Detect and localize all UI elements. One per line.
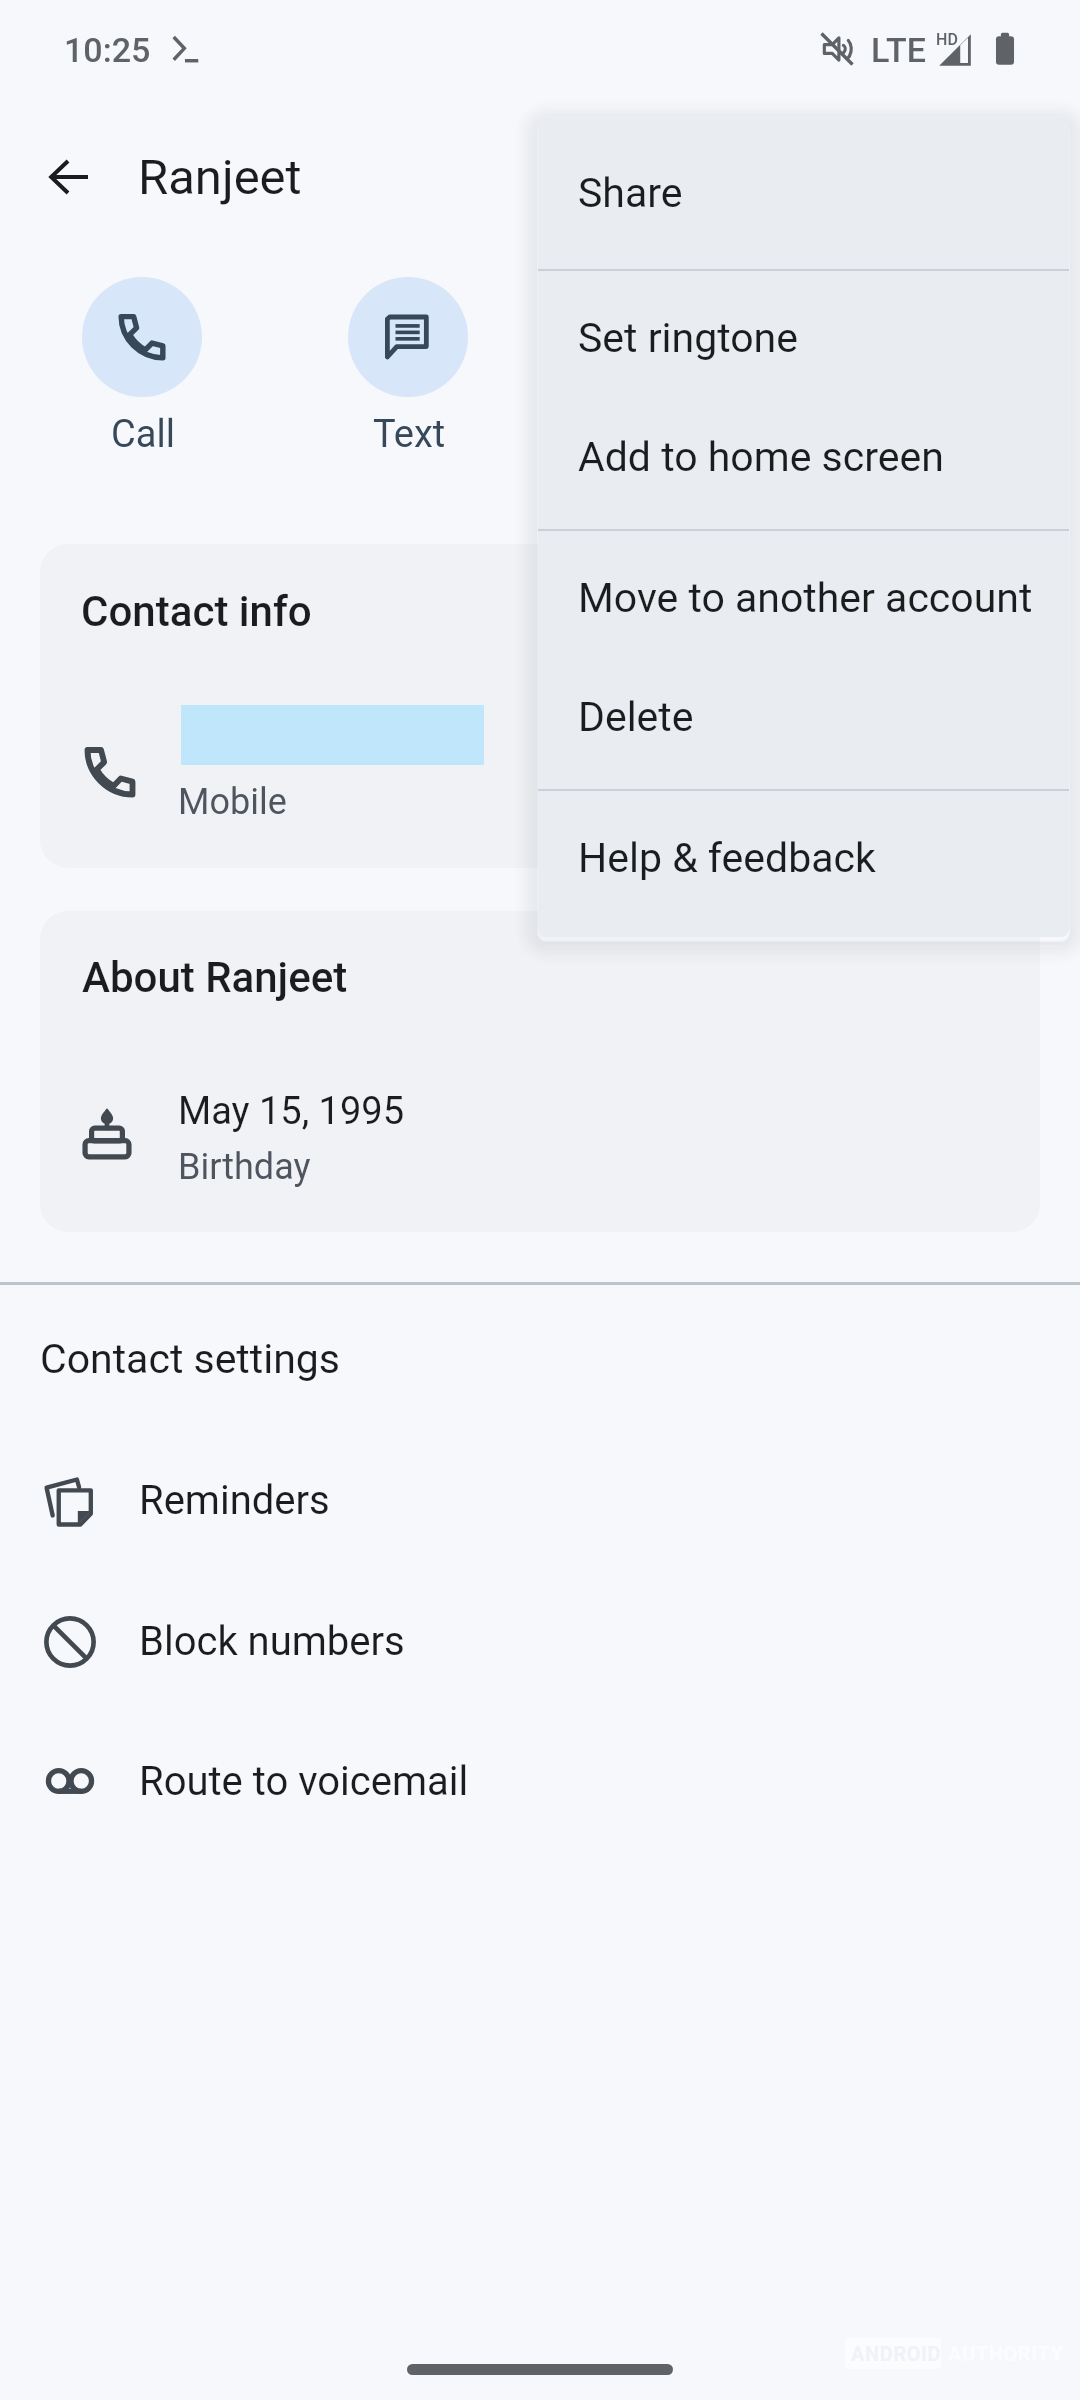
button[interactable]: About Ranjeet <box>40 911 1040 1232</box>
button[interactable]: Back <box>26 133 114 221</box>
staticText: About Ranjeet <box>82 953 348 1002</box>
staticText: Mobile <box>178 781 287 823</box>
button[interactable]: Set ringtone <box>538 273 1069 392</box>
button[interactable]: Call <box>82 277 202 457</box>
staticText: Text <box>373 412 446 457</box>
staticText: Block numbers <box>139 1618 405 1665</box>
staticText: Move to another account <box>578 574 1033 622</box>
staticText: Share <box>578 169 683 217</box>
staticText: LTE <box>871 30 926 70</box>
staticText: Delete <box>578 693 694 741</box>
staticText: May 15, 1995 <box>178 1089 405 1134</box>
button[interactable]: Block numbers <box>0 1586 1080 1696</box>
button[interactable]: Text <box>348 277 468 457</box>
button[interactable]: Route to voicemail <box>0 1725 1080 1835</box>
button[interactable]: Share <box>538 128 1069 247</box>
staticText: Birthday <box>178 1146 311 1188</box>
staticText: Help & feedback <box>578 834 876 882</box>
staticText: Add to home screen <box>578 433 944 481</box>
staticText: Call <box>111 412 175 457</box>
button[interactable]: Help & feedback <box>538 793 1069 912</box>
staticText: Contact info <box>81 587 312 636</box>
button[interactable]: Delete <box>538 652 1069 771</box>
button[interactable]: Add to home screen <box>538 392 1069 511</box>
button[interactable]: Move to another account <box>538 533 1069 652</box>
button[interactable]: Contact info <box>40 544 1040 868</box>
staticText: Ranjeet <box>138 149 302 206</box>
staticText: ANDROID <box>851 2342 942 2365</box>
staticText: Set ringtone <box>578 314 798 362</box>
staticText: Reminders <box>139 1477 330 1524</box>
button[interactable]: Reminders <box>0 1446 1080 1556</box>
staticText: HD <box>936 30 958 49</box>
staticText: Route to voicemail <box>139 1758 469 1805</box>
staticText: 10:25 <box>64 30 151 70</box>
staticText: Contact settings <box>40 1335 340 1383</box>
